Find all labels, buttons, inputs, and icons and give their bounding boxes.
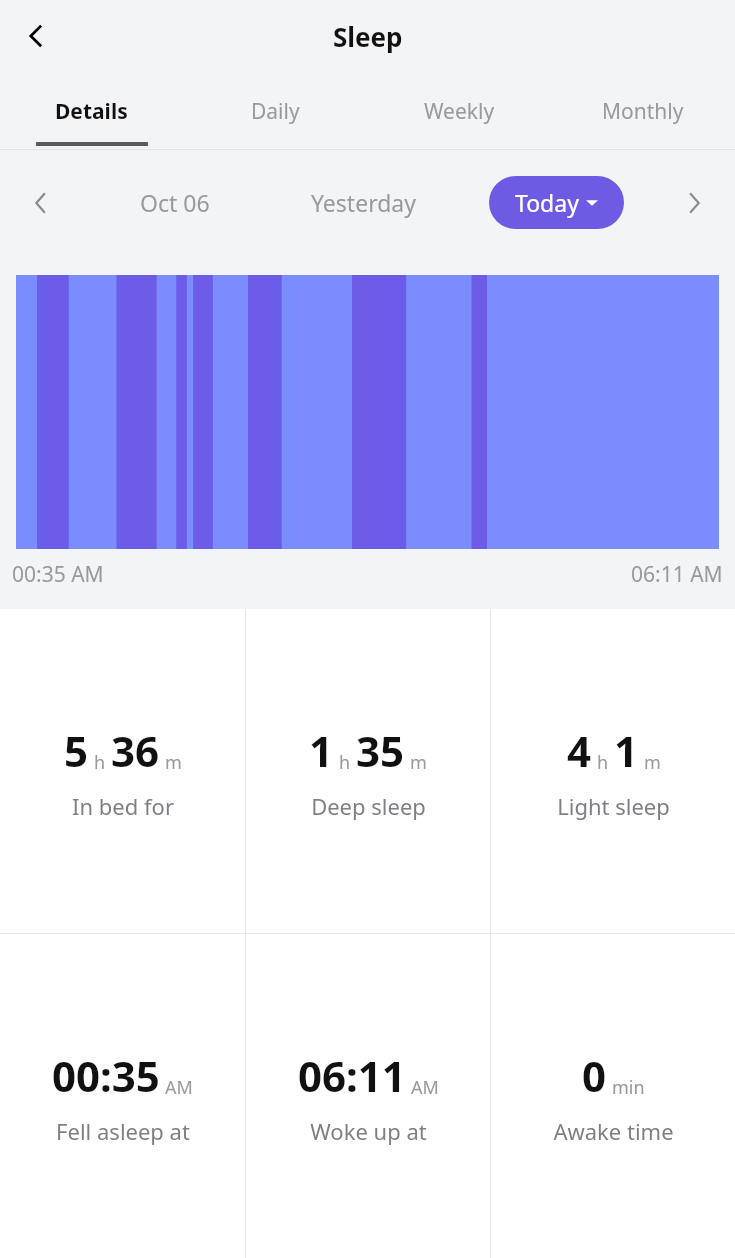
staticText: Sleep [333, 19, 403, 54]
button[interactable]: 4 [491, 609, 735, 933]
staticText: Yesterday [311, 187, 416, 218]
button[interactable]: 0 [491, 934, 735, 1258]
button[interactable]: Daily [183, 72, 367, 150]
staticText: h [339, 750, 351, 775]
staticText: 06:11 [298, 1047, 406, 1104]
staticText: 0 [582, 1047, 607, 1104]
staticText: m [410, 750, 427, 775]
button[interactable]: Next day [653, 150, 735, 255]
staticText: Daily [251, 97, 300, 126]
staticText: 00:35 AM [12, 560, 104, 589]
button[interactable]: 00:35 [0, 934, 245, 1258]
button[interactable]: Previous day [0, 150, 82, 255]
staticText: 36 [111, 722, 160, 779]
staticText: Light sleep [557, 791, 670, 821]
button[interactable]: 5 [0, 609, 245, 933]
button[interactable]: Back [8, 8, 64, 64]
button[interactable]: Oct 06 [82, 150, 267, 255]
staticText: Weekly [424, 97, 495, 126]
staticText: AM [411, 1075, 439, 1100]
button[interactable]: Yesterday [267, 150, 460, 255]
staticText: Woke up at [310, 1116, 427, 1146]
staticText: 00:35 [52, 1047, 160, 1104]
staticText: Details [55, 97, 128, 126]
staticText: 1 [614, 722, 639, 779]
button[interactable]: Monthly [551, 72, 735, 150]
button[interactable]: Details [0, 72, 183, 150]
staticText: In bed for [72, 791, 174, 821]
button[interactable]: Sleep stages chart [16, 275, 719, 549]
button[interactable]: Today [489, 176, 624, 229]
staticText: 1 [309, 722, 334, 779]
staticText: Oct 06 [140, 187, 210, 218]
staticText: Fell asleep at [56, 1116, 190, 1146]
staticText: Monthly [602, 97, 684, 126]
staticText: Deep sleep [311, 791, 426, 821]
button[interactable]: 06:11 [246, 934, 490, 1258]
staticText: min [612, 1075, 645, 1100]
button[interactable]: 1 [246, 609, 490, 933]
staticText: h [597, 750, 609, 775]
staticText: m [165, 750, 182, 775]
staticText: h [94, 750, 106, 775]
button[interactable]: Weekly [367, 72, 551, 150]
staticText: 4 [567, 722, 592, 779]
staticText: Today [515, 187, 579, 218]
staticText: Awake time [553, 1116, 674, 1146]
staticText: 5 [64, 722, 89, 779]
staticText: m [644, 750, 661, 775]
staticText: AM [165, 1075, 193, 1100]
staticText: 35 [356, 722, 405, 779]
staticText: 06:11 AM [631, 560, 723, 589]
